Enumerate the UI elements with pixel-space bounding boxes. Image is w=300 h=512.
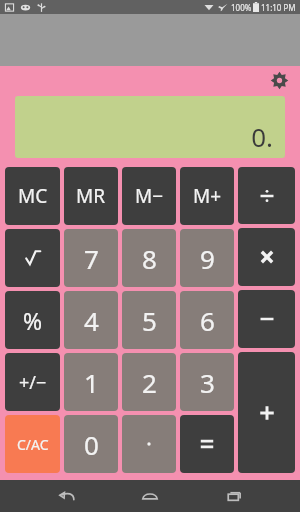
button[interactable]: Back — [50, 480, 84, 512]
button[interactable]: MC — [5, 167, 60, 225]
button[interactable] — [122, 415, 176, 473]
staticText: M+ — [193, 183, 222, 209]
button[interactable]: 9 — [180, 229, 234, 287]
button[interactable]: 7 — [64, 229, 118, 287]
button[interactable]: 2 — [122, 353, 176, 411]
button[interactable]: M+ — [180, 167, 234, 225]
staticText: 100% — [231, 2, 252, 13]
button[interactable]: 6 — [180, 291, 234, 349]
staticText: 5 — [142, 303, 157, 338]
button[interactable]: M− — [122, 167, 176, 225]
button[interactable]: C/AC — [5, 415, 60, 473]
staticText: 0 — [84, 427, 99, 462]
button[interactable]: Minus — [238, 290, 295, 348]
staticText: 3 — [200, 365, 215, 400]
staticText: 9 — [200, 241, 215, 276]
button[interactable]: 4 — [64, 291, 118, 349]
staticText: 1 — [84, 365, 99, 400]
staticText: % — [23, 305, 43, 336]
button[interactable]: % — [5, 291, 60, 349]
staticText: 4 — [84, 303, 99, 338]
button[interactable]: MR — [64, 167, 118, 225]
button[interactable]: 0 — [64, 415, 118, 473]
button[interactable]: 3 — [180, 353, 234, 411]
staticText: M− — [135, 183, 164, 209]
button[interactable]: 1 — [64, 353, 118, 411]
button[interactable]: Recents — [217, 480, 251, 512]
button[interactable]: Plus — [238, 352, 295, 473]
staticText: 0. — [251, 119, 273, 154]
staticText: 8 — [142, 241, 157, 276]
button[interactable]: 8 — [122, 229, 176, 287]
staticText: MR — [76, 183, 106, 209]
staticText: C/AC — [17, 435, 49, 454]
staticText: MC — [18, 183, 48, 209]
staticText: 7 — [84, 241, 99, 276]
button[interactable]: Home — [133, 480, 167, 512]
staticText: +/− — [19, 370, 47, 395]
staticText: 2 — [142, 365, 157, 400]
staticText: 6 — [200, 303, 215, 338]
button[interactable] — [180, 415, 234, 473]
staticText: 11:10 PM — [261, 2, 296, 13]
button[interactable]: Settings — [268, 69, 290, 91]
button[interactable]: 5 — [122, 291, 176, 349]
button[interactable] — [5, 229, 60, 287]
button[interactable]: +/− — [5, 353, 60, 411]
button[interactable]: Divide — [238, 167, 295, 224]
button[interactable]: Multiply — [238, 228, 295, 286]
